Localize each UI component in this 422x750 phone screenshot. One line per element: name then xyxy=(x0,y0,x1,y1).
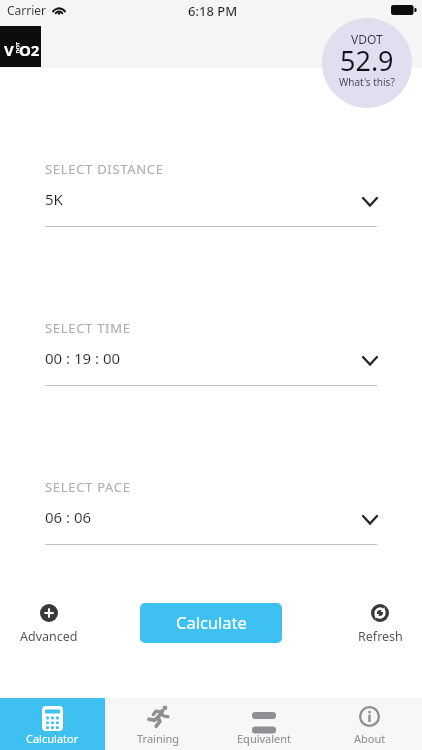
staticText: O2 xyxy=(19,40,40,60)
button[interactable]: SELECT PACE xyxy=(45,478,377,545)
staticText: 5K xyxy=(45,189,63,209)
staticText: 52.9 xyxy=(340,42,394,79)
staticText: Refresh xyxy=(358,628,403,645)
button[interactable]: SELECT DISTANCE xyxy=(45,160,377,227)
button[interactable]: VDOT xyxy=(322,18,412,108)
staticText: Equivalent xyxy=(237,731,292,746)
staticText: About xyxy=(354,731,386,746)
button[interactable]: About xyxy=(317,698,422,750)
button[interactable]: Calculate xyxy=(140,603,282,643)
staticText: Training xyxy=(137,731,180,746)
button[interactable]: Advanced xyxy=(20,604,77,645)
button[interactable]: VDOT O2 logo xyxy=(0,26,41,67)
staticText: 06 : 06 xyxy=(45,507,92,527)
staticText: What's this? xyxy=(339,75,395,89)
staticText: VDOT xyxy=(351,31,383,47)
staticText: Calculator xyxy=(26,731,79,746)
button[interactable]: Training xyxy=(105,698,211,750)
staticText: 6:18 PM xyxy=(188,2,238,20)
staticText: V xyxy=(4,40,14,60)
staticText: SELECT PACE xyxy=(45,478,131,496)
staticText: Carrier xyxy=(7,2,47,18)
button[interactable]: SELECT TIME xyxy=(45,319,377,386)
button[interactable]: Calculator xyxy=(0,698,105,750)
staticText: Advanced xyxy=(20,628,77,645)
staticText: Calculate xyxy=(176,611,247,633)
button[interactable]: Refresh xyxy=(352,604,408,645)
staticText: SELECT TIME xyxy=(45,319,131,337)
staticText: DOT xyxy=(13,41,19,53)
staticText: SELECT DISTANCE xyxy=(45,160,164,178)
staticText: 00 : 19 : 00 xyxy=(45,348,121,368)
button[interactable]: Equivalent xyxy=(211,698,317,750)
